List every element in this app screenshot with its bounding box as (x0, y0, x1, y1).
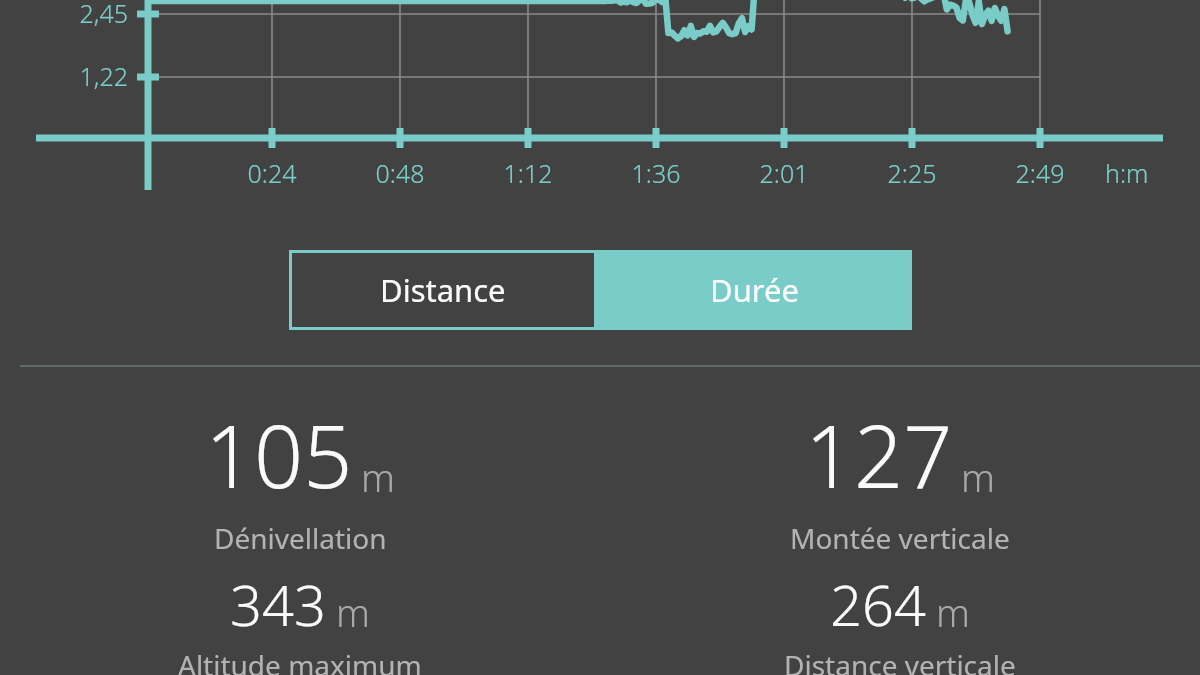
button[interactable]: Durée (597, 250, 912, 330)
button[interactable]: Distance (292, 253, 594, 327)
button[interactable]: 105 (50, 396, 550, 557)
staticText: Montée verticale (790, 519, 1010, 557)
staticText: m (961, 451, 995, 503)
button[interactable]: 343 (50, 566, 550, 675)
staticText: 1:12 (468, 156, 588, 190)
staticText: 105 (205, 396, 353, 513)
staticText: m (361, 451, 395, 503)
staticText: h:m (1105, 156, 1149, 190)
staticText: 0:24 (212, 156, 332, 190)
staticText: 0:48 (340, 156, 460, 190)
staticText: Durée (710, 269, 799, 311)
staticText: 2:49 (980, 156, 1100, 190)
staticText: Distance verticale (784, 646, 1016, 675)
staticText: 2,45 (0, 0, 128, 30)
staticText: Altitude maximum (178, 646, 422, 675)
staticText: m (936, 586, 970, 638)
staticText: 1,22 (0, 59, 128, 93)
staticText: 2:01 (724, 156, 844, 190)
staticText: 1:36 (596, 156, 716, 190)
button[interactable]: 127 (650, 396, 1150, 557)
staticText: 343 (230, 566, 326, 642)
staticText: 264 (830, 566, 926, 642)
staticText: 2:25 (852, 156, 972, 190)
staticText: 127 (805, 396, 953, 513)
staticText: Distance (380, 269, 506, 311)
staticText: m (336, 586, 370, 638)
staticText: Dénivellation (214, 519, 387, 557)
button[interactable]: 264 (650, 566, 1150, 675)
